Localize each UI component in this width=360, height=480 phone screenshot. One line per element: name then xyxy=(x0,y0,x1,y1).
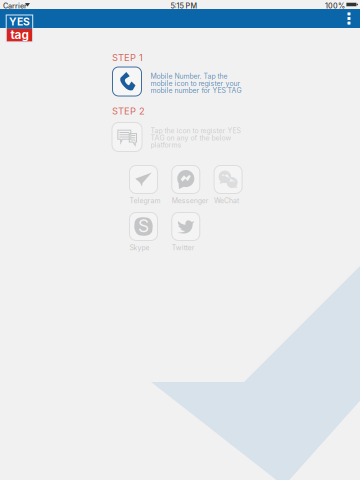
staticText: Mobile Number. Tap the mobile icon to re… xyxy=(150,72,241,95)
staticText: Tap the icon to register YES TAG on any … xyxy=(150,126,240,149)
staticText: 5:15 PM xyxy=(170,2,197,10)
staticText: STEP 2 xyxy=(112,105,145,117)
button[interactable]: Register mobile number xyxy=(112,67,141,96)
staticText: S xyxy=(138,215,149,236)
staticText: STEP 1 xyxy=(112,52,143,63)
button[interactable]: S xyxy=(129,212,157,259)
button[interactable]: Twitter xyxy=(172,212,200,259)
staticText: Twitter xyxy=(172,243,195,252)
staticText: WeChat xyxy=(214,196,239,205)
staticText: Messenger xyxy=(172,196,209,205)
button[interactable]: Messenger xyxy=(172,165,200,212)
staticText: Skype xyxy=(129,243,149,252)
staticText: Telegram xyxy=(129,196,160,205)
button[interactable]: More options xyxy=(338,9,360,28)
staticText: tag xyxy=(10,28,28,42)
button[interactable]: WeChat xyxy=(214,165,242,212)
button[interactable]: Telegram xyxy=(129,165,157,212)
staticText: YES xyxy=(9,15,30,28)
staticText: Carrier xyxy=(3,2,27,10)
staticText: 100% xyxy=(325,2,345,10)
